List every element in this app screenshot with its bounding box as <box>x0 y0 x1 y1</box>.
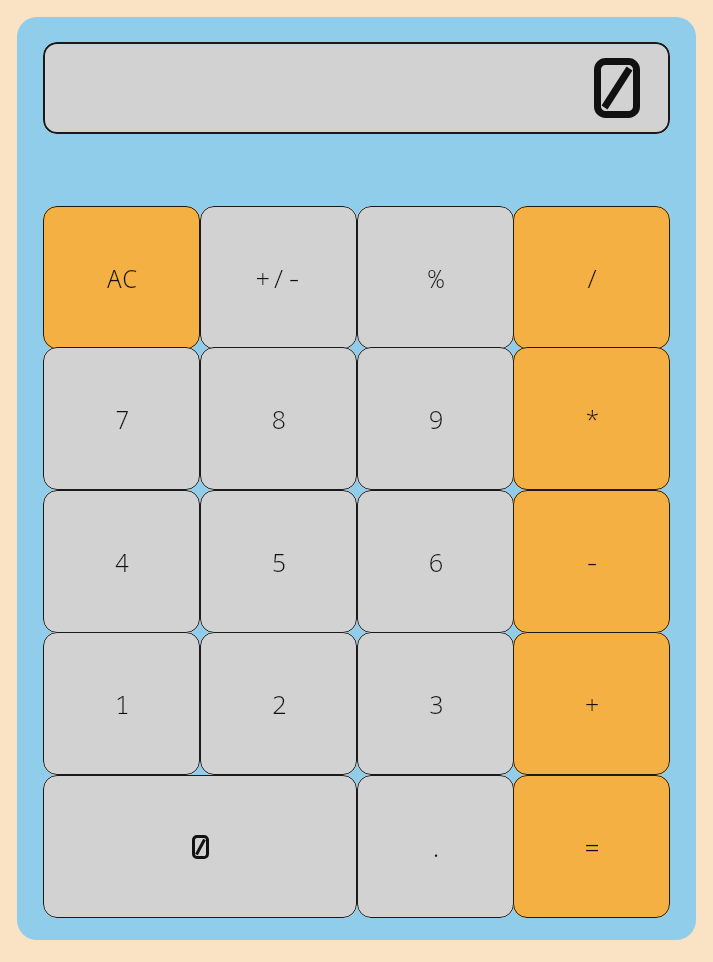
button[interactable]: = <box>513 775 670 918</box>
staticText: 2 <box>271 686 287 721</box>
staticText: * <box>584 401 600 436</box>
button[interactable]: 5 <box>200 490 357 633</box>
button[interactable]: 1 <box>43 632 200 775</box>
staticText: / <box>584 260 600 295</box>
button[interactable]: 8 <box>200 347 357 490</box>
staticText: = <box>584 829 600 864</box>
button[interactable]: . <box>357 775 514 918</box>
button[interactable]: AC <box>43 206 200 349</box>
button[interactable]: 4 <box>43 490 200 633</box>
staticText: 1 <box>114 686 130 721</box>
staticText: 4 <box>114 544 130 579</box>
button[interactable]: % <box>357 206 514 349</box>
button[interactable]: +/- <box>200 206 357 349</box>
button[interactable]: Zero <box>43 775 357 918</box>
staticText: % <box>428 260 444 295</box>
staticText: AC <box>106 260 138 295</box>
button[interactable]: + <box>513 632 670 775</box>
staticText: - <box>584 544 600 579</box>
staticText: +/- <box>255 260 302 295</box>
button[interactable] <box>43 42 670 134</box>
staticText: 7 <box>114 401 130 436</box>
staticText: 5 <box>271 544 287 579</box>
staticText: 9 <box>428 401 444 436</box>
staticText: . <box>428 829 444 864</box>
button[interactable]: / <box>513 206 670 349</box>
button[interactable]: 9 <box>357 347 514 490</box>
button[interactable]: 6 <box>357 490 514 633</box>
staticText: + <box>584 686 600 721</box>
button[interactable]: 3 <box>357 632 514 775</box>
button[interactable]: 7 <box>43 347 200 490</box>
staticText: 8 <box>271 401 287 436</box>
staticText: 3 <box>428 686 444 721</box>
button[interactable]: - <box>513 490 670 633</box>
staticText: 6 <box>428 544 444 579</box>
button[interactable]: * <box>513 347 670 490</box>
button[interactable]: 2 <box>200 632 357 775</box>
